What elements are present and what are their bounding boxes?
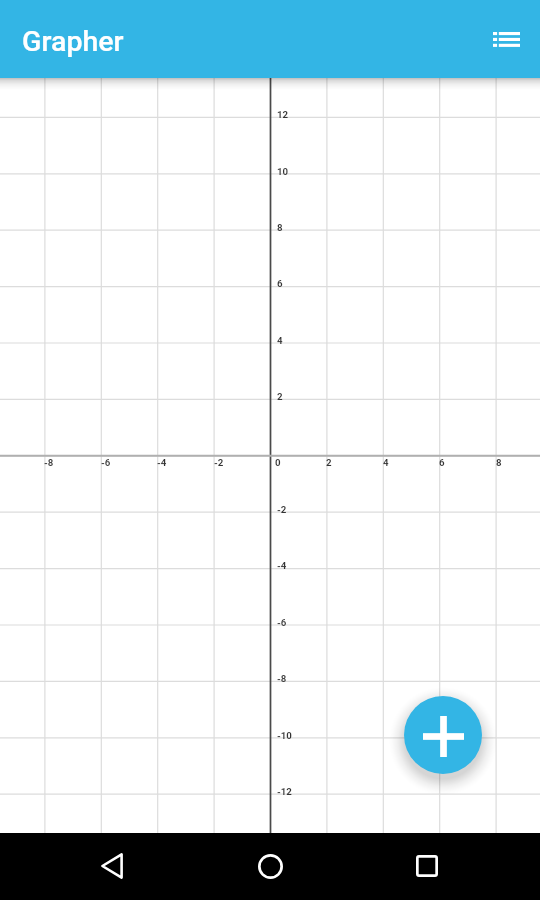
button[interactable]: Function list [482,15,530,63]
staticText: 8 [277,222,283,233]
staticText: -2 [277,504,287,515]
staticText: 6 [439,457,445,468]
staticText: 10 [277,166,289,177]
staticText: 8 [496,457,502,468]
staticText: Grapher [22,25,124,58]
staticText: -2 [214,457,224,468]
staticText: -6 [277,617,287,628]
staticText: 12 [277,109,289,120]
staticText: -12 [277,786,292,797]
staticText: 2 [326,457,332,468]
button[interactable]: Recent apps [403,842,451,890]
staticText: 4 [277,335,283,346]
staticText: -8 [44,457,54,468]
staticText: 4 [383,457,389,468]
staticText: -8 [277,673,287,684]
staticText: -4 [157,457,167,468]
button[interactable]: Home [246,842,294,890]
staticText: -6 [101,457,111,468]
staticText: 0 [275,457,281,468]
staticText: 6 [277,278,283,289]
button[interactable]: Add function [404,696,482,774]
button[interactable]: Back [89,842,137,890]
staticText: 2 [277,391,283,402]
staticText: -10 [277,730,292,741]
staticText: -4 [277,560,287,571]
